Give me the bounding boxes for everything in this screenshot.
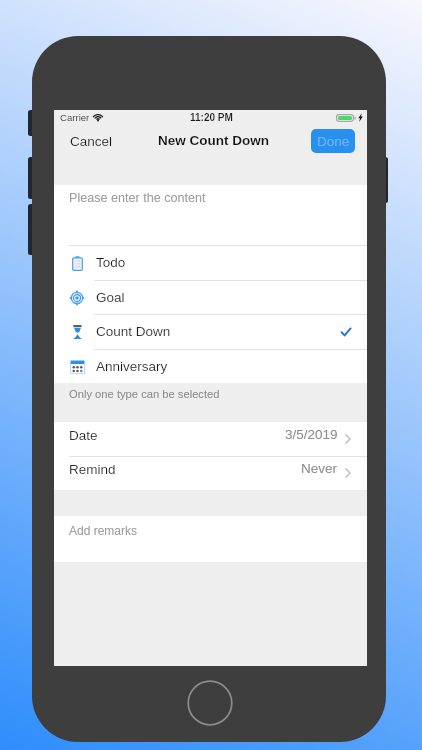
button[interactable]: Done: [311, 129, 355, 153]
staticText: Goal: [96, 290, 125, 305]
staticText: Add remarks: [69, 524, 138, 537]
staticText: Remind: [69, 462, 116, 477]
staticText: 3/5/2019: [285, 427, 338, 442]
button[interactable]: Todo: [54, 245, 367, 280]
staticText: New Count Down: [158, 133, 269, 148]
staticText: Done: [317, 134, 350, 149]
button[interactable]: Anniversary: [54, 349, 367, 384]
staticText: Anniversary: [96, 359, 168, 374]
staticText: Todo: [96, 255, 126, 270]
button[interactable]: Add remarks: [54, 516, 367, 562]
staticText: 11:20 PM: [190, 112, 233, 123]
staticText: Please enter the content: [69, 191, 206, 205]
button[interactable]: Please enter the content: [54, 185, 367, 245]
button[interactable]: Remind: [54, 456, 367, 490]
button[interactable]: Goal: [54, 280, 367, 315]
button[interactable]: Cancel: [60, 128, 123, 155]
staticText: Never: [301, 461, 338, 476]
button[interactable]: Date: [54, 422, 367, 456]
staticText: Cancel: [70, 134, 113, 149]
staticText: Date: [69, 428, 98, 443]
staticText: Carrier: [60, 112, 90, 123]
staticText: Only one type can be selected: [69, 388, 220, 401]
staticText: Count Down: [96, 324, 171, 339]
button[interactable]: Count Down: [54, 314, 367, 349]
